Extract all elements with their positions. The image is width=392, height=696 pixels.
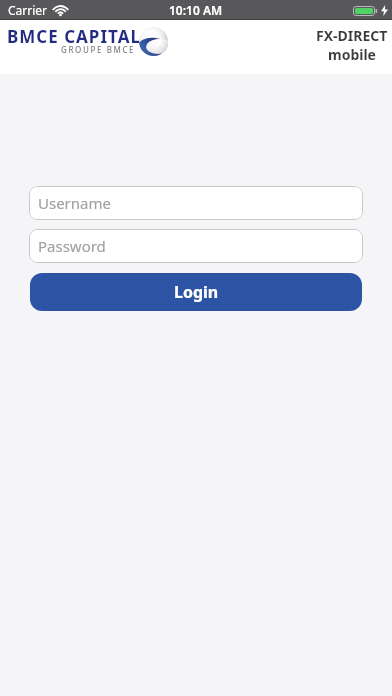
staticText: Login	[174, 281, 219, 303]
staticText: BMCE CAPITAL	[7, 25, 141, 48]
staticText: GROUPE BMCE	[61, 44, 136, 55]
staticText: Carrier	[8, 2, 48, 18]
staticText: 10:10 AM	[169, 2, 223, 18]
staticText: FX-DIRECT	[316, 26, 388, 45]
staticText: Password	[38, 236, 106, 256]
button[interactable]: Login	[30, 273, 362, 311]
staticText: mobile	[328, 45, 376, 64]
button[interactable]: Username	[29, 186, 363, 220]
staticText: Username	[38, 193, 111, 213]
button[interactable]: Password	[29, 229, 363, 263]
